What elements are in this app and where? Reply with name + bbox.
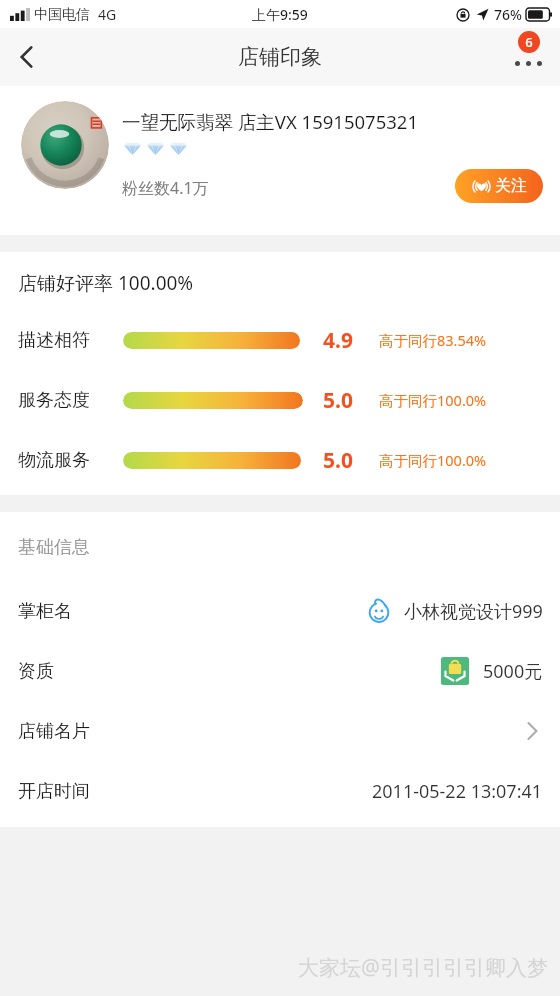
staticText: 粉丝数4.1万 xyxy=(122,177,209,199)
button[interactable]: 描述相符 xyxy=(0,318,560,362)
staticText: 描述相符 xyxy=(18,329,123,352)
button[interactable]: 掌柜名 xyxy=(0,581,560,641)
staticText: 5000元 xyxy=(483,659,543,684)
staticText: 一望无际翡翠 店主VX 15915075321 xyxy=(122,109,418,134)
staticText: 上午9:59 xyxy=(252,5,308,24)
button[interactable]: 开店时间 xyxy=(0,761,560,821)
staticText: 高于同行100.0% xyxy=(379,390,487,410)
staticText: 服务态度 xyxy=(18,389,123,412)
button[interactable]: 资质 xyxy=(0,641,560,701)
staticText: 5.0 xyxy=(323,446,365,475)
staticText: 物流服务 xyxy=(18,449,123,472)
button[interactable]: 店铺名片 xyxy=(0,701,560,761)
staticText: 6 xyxy=(525,33,533,51)
staticText: 中国电信 xyxy=(34,6,90,24)
staticText: 高于同行100.0% xyxy=(379,450,487,470)
button[interactable]: More options xyxy=(496,28,560,86)
staticText: 掌柜名 xyxy=(18,600,72,623)
staticText: 店铺好评率 100.00% xyxy=(18,270,194,296)
staticText: 关注 xyxy=(495,176,527,196)
staticText: 76% xyxy=(494,5,522,24)
button[interactable]: Shop avatar xyxy=(21,101,109,189)
staticText: 小林视觉设计999 xyxy=(404,599,543,624)
staticText: 2011-05-22 13:07:41 xyxy=(372,779,543,804)
staticText: 基础信息 xyxy=(18,536,90,559)
button[interactable]: 物流服务 xyxy=(0,438,560,482)
button[interactable]: 关注 xyxy=(455,169,543,203)
staticText: 店铺印象 xyxy=(238,44,322,70)
staticText: 店铺名片 xyxy=(18,720,90,743)
staticText: 大家坛@引引引引引卿入梦 xyxy=(298,953,548,982)
staticText: 资质 xyxy=(18,660,54,683)
staticText: 4G xyxy=(98,5,117,24)
button[interactable]: Back xyxy=(0,30,54,84)
button[interactable]: 服务态度 xyxy=(0,378,560,422)
staticText: 高于同行83.54% xyxy=(379,330,487,350)
staticText: 4.9 xyxy=(323,326,365,355)
staticText: 开店时间 xyxy=(18,780,90,803)
staticText: 5.0 xyxy=(323,386,365,415)
